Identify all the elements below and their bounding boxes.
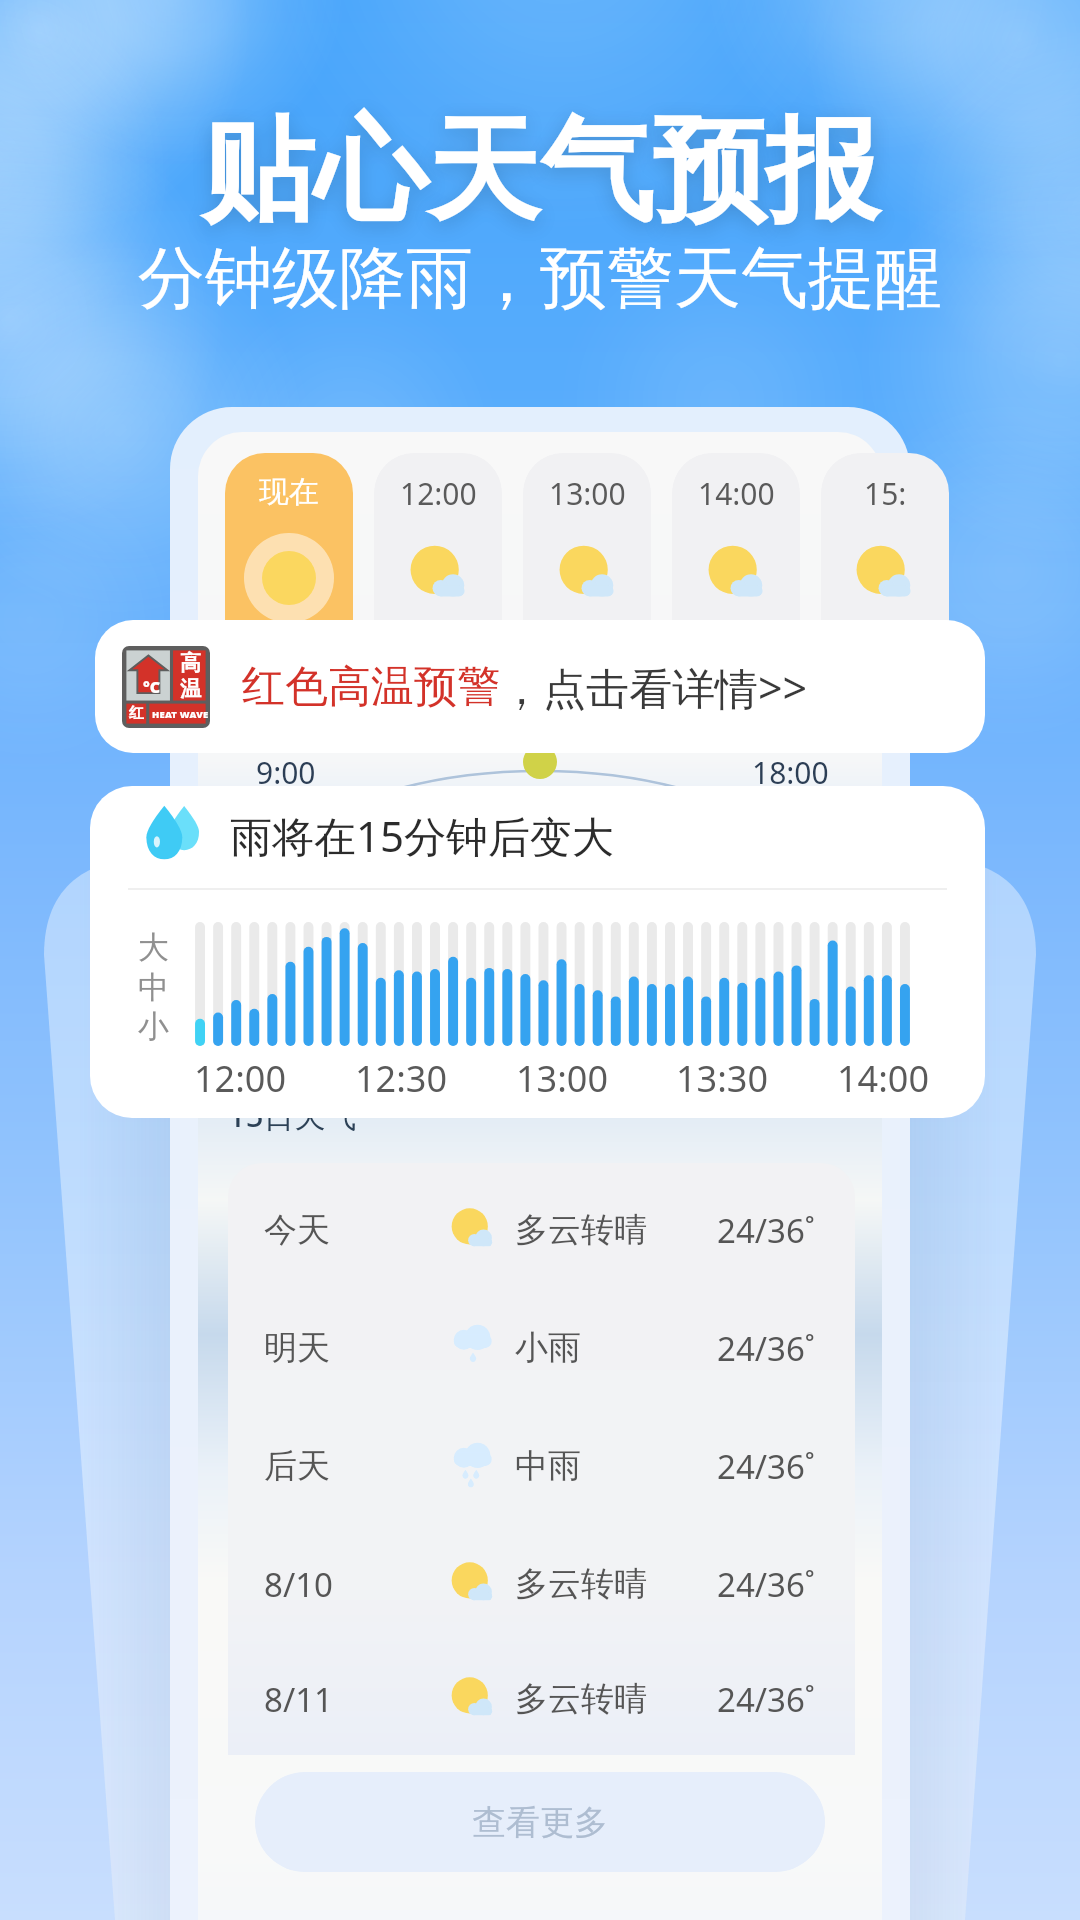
staticText: 14:00 — [698, 473, 775, 514]
staticText: °C — [143, 676, 161, 698]
staticText: 高 — [180, 650, 201, 676]
staticText: 12:00 — [194, 1054, 287, 1103]
staticText: 贴心天气预报 — [201, 100, 879, 242]
button[interactable]: 明天 — [228, 1289, 855, 1407]
button[interactable]: 15: — [821, 453, 949, 643]
button[interactable]: 13:00 — [523, 453, 651, 643]
staticText: 13:00 — [516, 1054, 609, 1103]
button[interactable]: 8/11 — [228, 1643, 855, 1755]
staticText: 中雨 — [515, 1445, 581, 1487]
staticText: 24/36˚ — [717, 1444, 815, 1489]
button[interactable]: 现在 — [225, 453, 353, 643]
staticText: 14:00 — [837, 1054, 930, 1103]
staticText: 温 — [180, 676, 201, 702]
staticText: 多云转晴 — [515, 1209, 647, 1251]
button[interactable]: 今天 — [228, 1171, 855, 1289]
staticText: 查看更多 — [472, 1801, 608, 1844]
staticText: 13:00 — [549, 473, 626, 514]
staticText: 多云转晴 — [515, 1678, 647, 1720]
staticText: 15日天气 — [228, 1094, 357, 1136]
staticText: 后天 — [264, 1445, 330, 1487]
staticText: 24/36˚ — [717, 1562, 815, 1607]
staticText: 8/10 — [264, 1562, 333, 1607]
staticText: 大 — [138, 928, 169, 967]
staticText: 12:30 — [355, 1054, 448, 1103]
staticText: 小雨 — [515, 1327, 581, 1369]
button[interactable]: 后天 — [228, 1407, 855, 1525]
other: High temperature red alert — [122, 646, 210, 728]
button[interactable]: 雨将在15分钟后变大 — [90, 786, 985, 1118]
staticText: 8/11 — [264, 1677, 333, 1722]
staticText: 15: — [864, 473, 907, 514]
staticText: 9:00 — [256, 752, 316, 793]
button[interactable]: 14:00 — [672, 453, 800, 643]
staticText: 红色高温预警 — [242, 660, 500, 714]
staticText: 18:00 — [752, 752, 829, 793]
staticText: HEAT WAVE — [152, 708, 209, 721]
staticText: 雨将在15分钟后变大 — [230, 807, 615, 864]
staticText: 分钟级降雨，预警天气提醒 — [138, 236, 942, 320]
button[interactable]: 查看更多 — [255, 1772, 825, 1872]
staticText: 今天 — [264, 1209, 330, 1251]
staticText: 小 — [138, 1007, 169, 1046]
staticText: 明天 — [264, 1327, 330, 1369]
staticText: 现在 — [259, 473, 319, 511]
staticText: 13:30 — [676, 1054, 769, 1103]
staticText: 24/36˚ — [717, 1326, 815, 1371]
staticText: 12:00 — [400, 473, 477, 514]
staticText: 红 — [129, 704, 144, 723]
button[interactable]: 8/10 — [228, 1525, 855, 1643]
button[interactable]: High temperature red alert — [95, 620, 985, 753]
staticText: 24/36˚ — [717, 1677, 815, 1722]
staticText: 中 — [138, 968, 169, 1007]
staticText: 24/36˚ — [717, 1208, 815, 1253]
staticText: 多云转晴 — [515, 1563, 647, 1605]
staticText: ，点击看详情>> — [500, 658, 808, 717]
button[interactable]: 12:00 — [374, 453, 502, 643]
